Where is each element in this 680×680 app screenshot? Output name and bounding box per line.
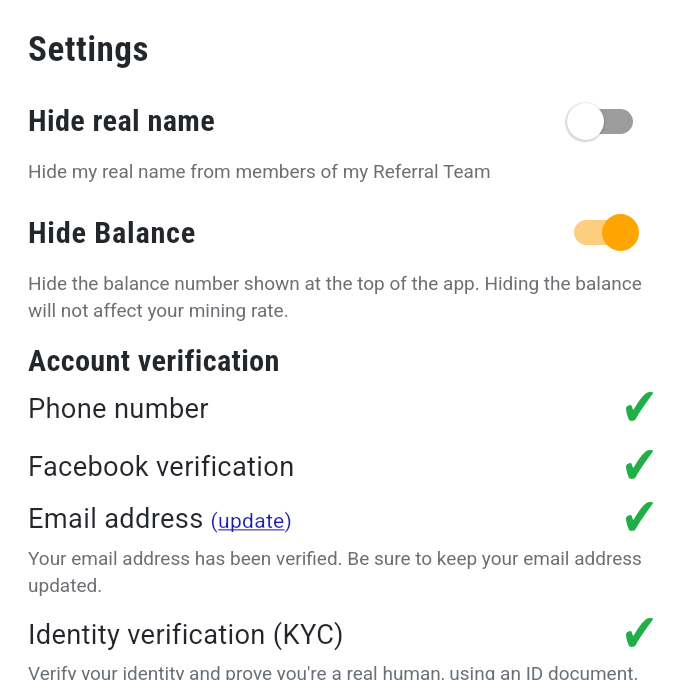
staticText: Hide Balance	[28, 215, 196, 251]
button[interactable]: Identity verification KYC verified	[0, 612, 680, 654]
staticText: Phone number	[28, 393, 209, 425]
button[interactable]: Verified	[618, 496, 660, 538]
button[interactable]: Email address verified	[0, 496, 680, 538]
button[interactable]: Verified	[618, 386, 660, 428]
button[interactable]: Hide real name	[0, 92, 680, 140]
button[interactable]: Turn on	[560, 97, 652, 145]
staticText: Hide real name	[28, 103, 216, 139]
staticText: Verify your identity and prove you're a …	[28, 662, 676, 680]
button[interactable]: Hide Balance	[0, 206, 680, 254]
button[interactable]: Phone number verified	[0, 386, 680, 428]
button[interactable]: Facebook verification verified	[0, 444, 680, 486]
staticText: Account verification	[28, 343, 280, 379]
button[interactable]: Verified	[618, 444, 660, 486]
staticText: Email address (update)	[28, 503, 293, 535]
staticText: Hide my real name from members of my Ref…	[28, 160, 628, 182]
staticText: Identity verification (KYC)	[28, 619, 344, 651]
staticText: Facebook verification	[28, 451, 295, 483]
staticText: Hide the balance number shown at the top…	[28, 272, 656, 321]
staticText: Settings	[28, 28, 149, 69]
button[interactable]: Verified	[618, 612, 660, 654]
staticText: Your email address has been verified. Be…	[28, 547, 656, 596]
button[interactable]: Turn off	[560, 208, 652, 256]
